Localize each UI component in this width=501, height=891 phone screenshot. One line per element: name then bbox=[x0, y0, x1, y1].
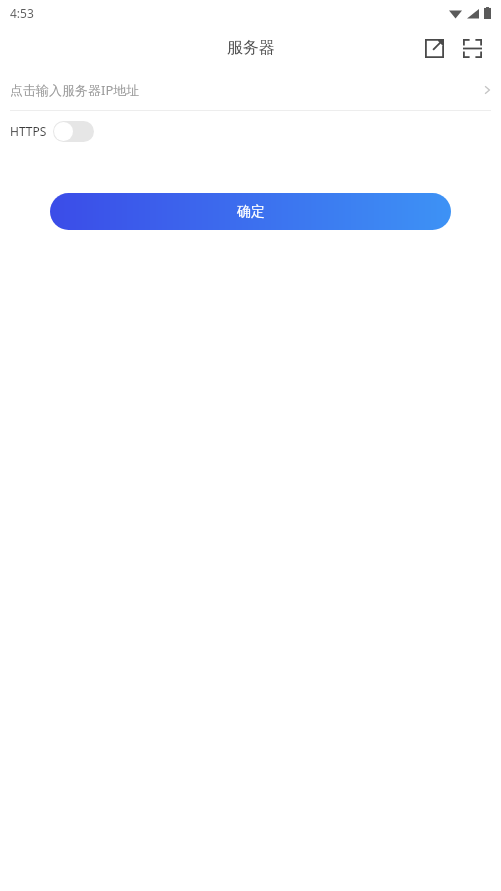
staticText: 服务器 bbox=[227, 38, 275, 58]
button[interactable]: Open external link bbox=[415, 29, 453, 67]
staticText: 点击输入服务器IP地址 bbox=[10, 81, 140, 99]
button[interactable]: Scan QR code bbox=[453, 29, 491, 67]
button[interactable]: 点击输入服务器IP地址 bbox=[0, 70, 501, 110]
staticText: 4:53 bbox=[10, 5, 34, 21]
staticText: 确定 bbox=[237, 203, 265, 221]
staticText: HTTPS bbox=[10, 123, 47, 139]
button[interactable]: 确定 bbox=[50, 193, 451, 230]
button[interactable]: HTTPS toggle bbox=[53, 121, 94, 142]
